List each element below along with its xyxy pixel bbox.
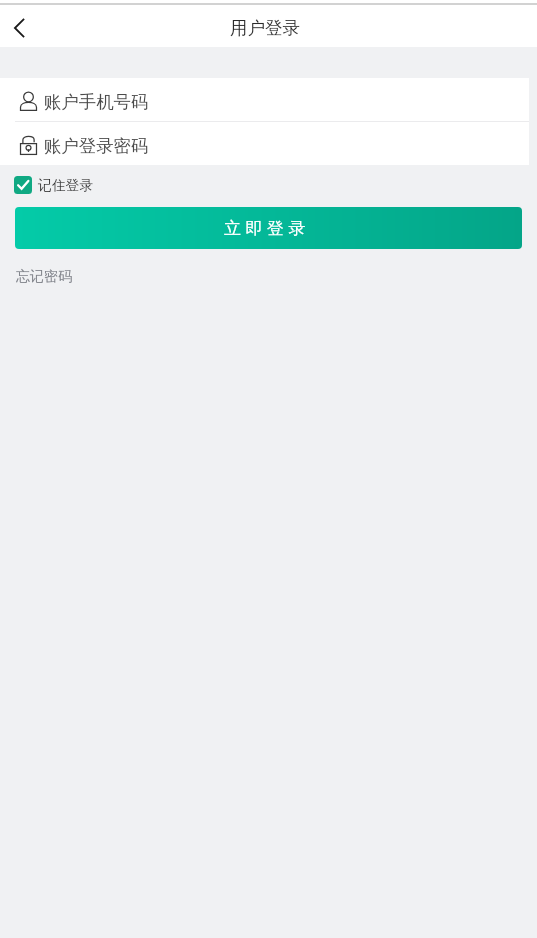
button[interactable]: 忘记密码 [16, 268, 72, 286]
staticText: 立即登录 [224, 218, 310, 239]
button[interactable]: 账户登录密码 [0, 122, 529, 165]
button[interactable]: 立即登录 [15, 207, 522, 249]
button[interactable]: Back [0, 9, 38, 47]
staticText: 账户手机号码 [44, 91, 149, 113]
button[interactable]: 记住登录 [14, 176, 94, 194]
staticText: 账户登录密码 [44, 135, 149, 157]
staticText: 忘记密码 [16, 268, 72, 286]
button[interactable]: 账户手机号码 [0, 78, 529, 121]
staticText: 用户登录 [230, 17, 300, 39]
staticText: 记住登录 [38, 177, 94, 194]
